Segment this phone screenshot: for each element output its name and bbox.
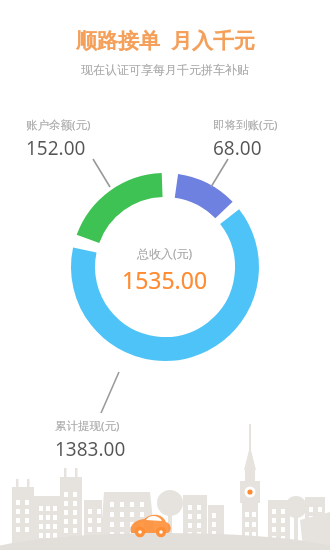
- staticText: 账户余额(元): [26, 117, 91, 133]
- staticText: 现在认证可享每月千元拼车补贴: [81, 62, 249, 77]
- staticText: 总收入(元): [137, 245, 193, 261]
- staticText: 1535.00: [122, 264, 208, 295]
- staticText: 152.00: [26, 135, 86, 161]
- staticText: 1383.00: [55, 436, 126, 462]
- staticText: 即将到账(元): [213, 117, 278, 133]
- button[interactable]: 累计提现(元): [55, 418, 126, 462]
- button[interactable]: 即将到账(元): [213, 117, 278, 161]
- staticText: 顺路接单 月入千元: [76, 26, 255, 55]
- button[interactable]: 收入分布环形图: [0, 0, 330, 550]
- button[interactable]: 账户余额(元): [26, 117, 91, 161]
- staticText: 68.00: [213, 135, 262, 161]
- staticText: 累计提现(元): [55, 418, 120, 434]
